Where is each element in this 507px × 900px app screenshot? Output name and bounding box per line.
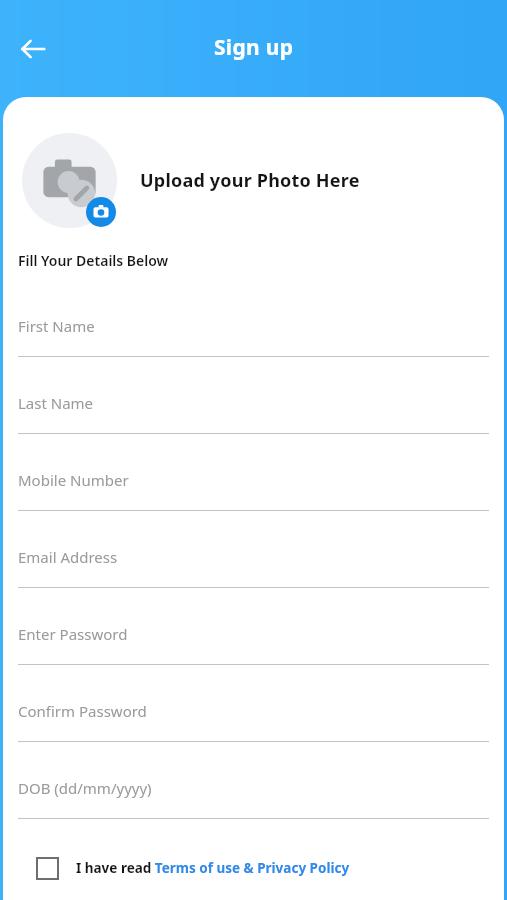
button[interactable]: Mobile Number <box>18 460 489 537</box>
button[interactable]: DOB (dd/mm/yyyy) <box>18 768 489 845</box>
staticText: I have read Terms of use & Privacy Polic… <box>76 859 350 877</box>
staticText: First Name <box>18 316 95 336</box>
staticText: Fill Your Details Below <box>18 251 169 270</box>
staticText: Upload your Photo Here <box>140 168 360 193</box>
button[interactable]: Confirm Password <box>18 691 489 768</box>
button[interactable]: Back <box>11 27 55 71</box>
staticText: DOB (dd/mm/yyyy) <box>18 778 152 798</box>
staticText: Sign up <box>214 33 294 62</box>
button[interactable]: Enter Password <box>18 614 489 691</box>
staticText: Enter Password <box>18 624 128 644</box>
button[interactable]: First Name <box>18 306 489 383</box>
staticText: Mobile Number <box>18 470 129 490</box>
button[interactable]: Last Name <box>18 383 489 460</box>
button[interactable]: I have read Terms of use & Privacy Polic… <box>36 849 492 887</box>
staticText: Confirm Password <box>18 701 147 721</box>
staticText: Last Name <box>18 393 94 413</box>
staticText: Email Address <box>18 547 118 567</box>
button[interactable]: Upload photo <box>22 133 117 228</box>
button[interactable]: Email Address <box>18 537 489 614</box>
